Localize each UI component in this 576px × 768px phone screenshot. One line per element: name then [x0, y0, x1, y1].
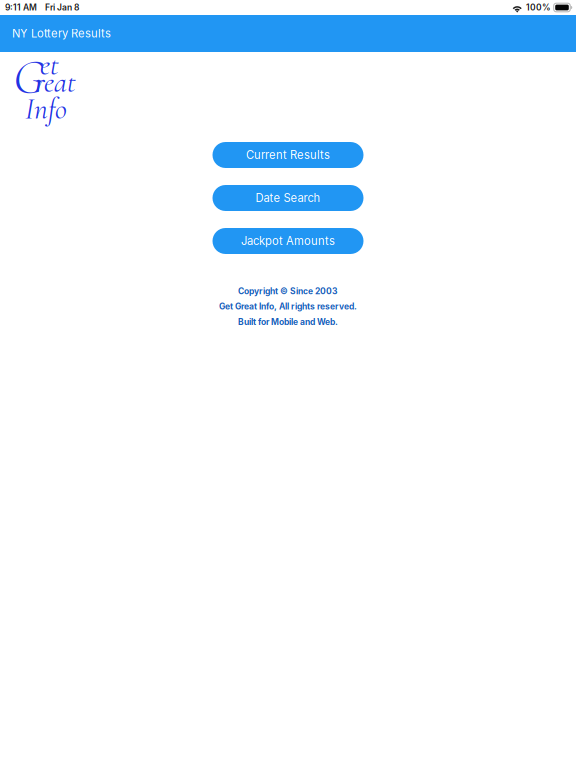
staticText: NY Lottery Results [12, 27, 111, 40]
staticText: Jackpot Amounts [241, 234, 335, 248]
staticText: Copyright © Since 2003 [238, 286, 338, 296]
staticText: et [40, 47, 59, 83]
staticText: Date Search [255, 191, 320, 205]
staticText: Built for Mobile and Web. [238, 317, 338, 327]
staticText: Current Results [246, 148, 330, 162]
staticText: 100% [526, 2, 551, 13]
staticText: Info [25, 91, 67, 127]
staticText: 9:11 AM [5, 2, 37, 13]
button[interactable]: Current Results [212, 142, 363, 168]
staticText: Get Great Info, All rights reserved. [219, 301, 357, 312]
staticText: reat [35, 65, 76, 100]
staticText: Fri Jan 8 [45, 2, 79, 13]
button[interactable]: Jackpot Amounts [212, 228, 363, 254]
staticText: G [13, 48, 44, 107]
button[interactable]: Date Search [212, 185, 363, 211]
